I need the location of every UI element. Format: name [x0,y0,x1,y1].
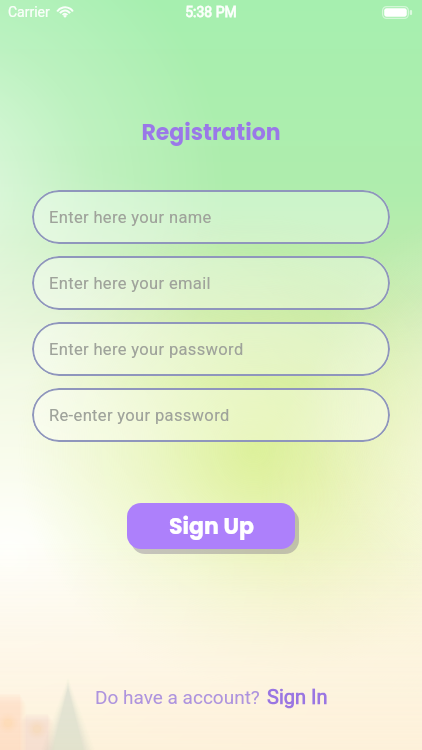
button[interactable]: Enter here your email [32,256,390,310]
staticText: Enter here your name [49,208,212,227]
staticText: 5:38 PM [0,4,422,20]
button[interactable]: Sign Up [127,503,295,549]
staticText: Re-enter your password [49,406,230,425]
button[interactable]: Re-enter your password [32,388,390,442]
button[interactable]: Sign In [267,685,328,708]
staticText: Do have a account? [95,686,260,708]
staticText: Carrier [8,4,50,20]
staticText: Sign Up [169,511,254,542]
staticText: Enter here your password [49,340,244,359]
staticText: Registration [0,117,422,148]
button[interactable]: Enter here your password [32,322,390,376]
button[interactable]: Enter here your name [32,190,390,244]
staticText: Sign In [267,685,328,708]
staticText: Enter here your email [49,274,211,293]
